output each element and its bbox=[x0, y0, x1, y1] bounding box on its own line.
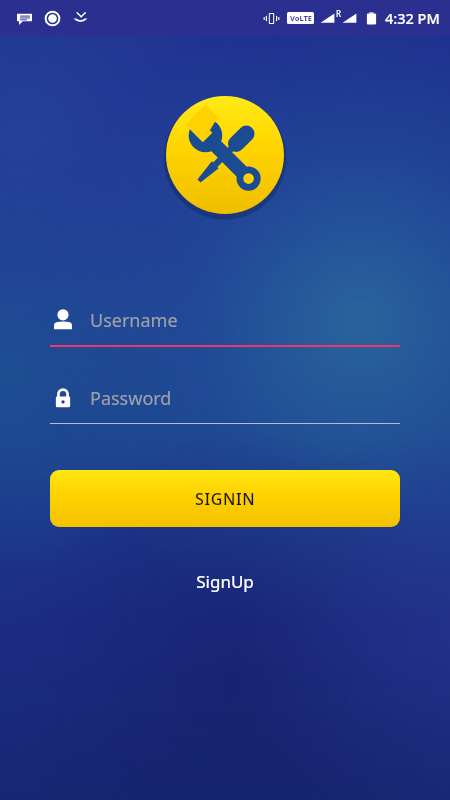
button[interactable]: SIGNIN bbox=[50, 470, 400, 527]
staticText: SignUp bbox=[196, 570, 254, 593]
staticText: Password bbox=[90, 386, 172, 411]
staticText: R bbox=[336, 8, 341, 19]
other: Password bbox=[50, 385, 76, 411]
staticText: 4:32 PM bbox=[385, 8, 440, 28]
button[interactable]: Password bbox=[50, 378, 400, 424]
button[interactable]: Username bbox=[50, 300, 400, 347]
staticText: VoLTE bbox=[290, 13, 312, 23]
other: Username bbox=[50, 307, 76, 333]
staticText: Username bbox=[90, 308, 178, 333]
staticText: SIGNIN bbox=[195, 488, 256, 510]
button[interactable]: SignUp bbox=[182, 564, 268, 599]
